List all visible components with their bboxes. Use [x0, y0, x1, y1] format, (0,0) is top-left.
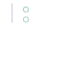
button[interactable]: First ring [0, 0, 64, 64]
button[interactable]: Second ring [0, 0, 64, 64]
